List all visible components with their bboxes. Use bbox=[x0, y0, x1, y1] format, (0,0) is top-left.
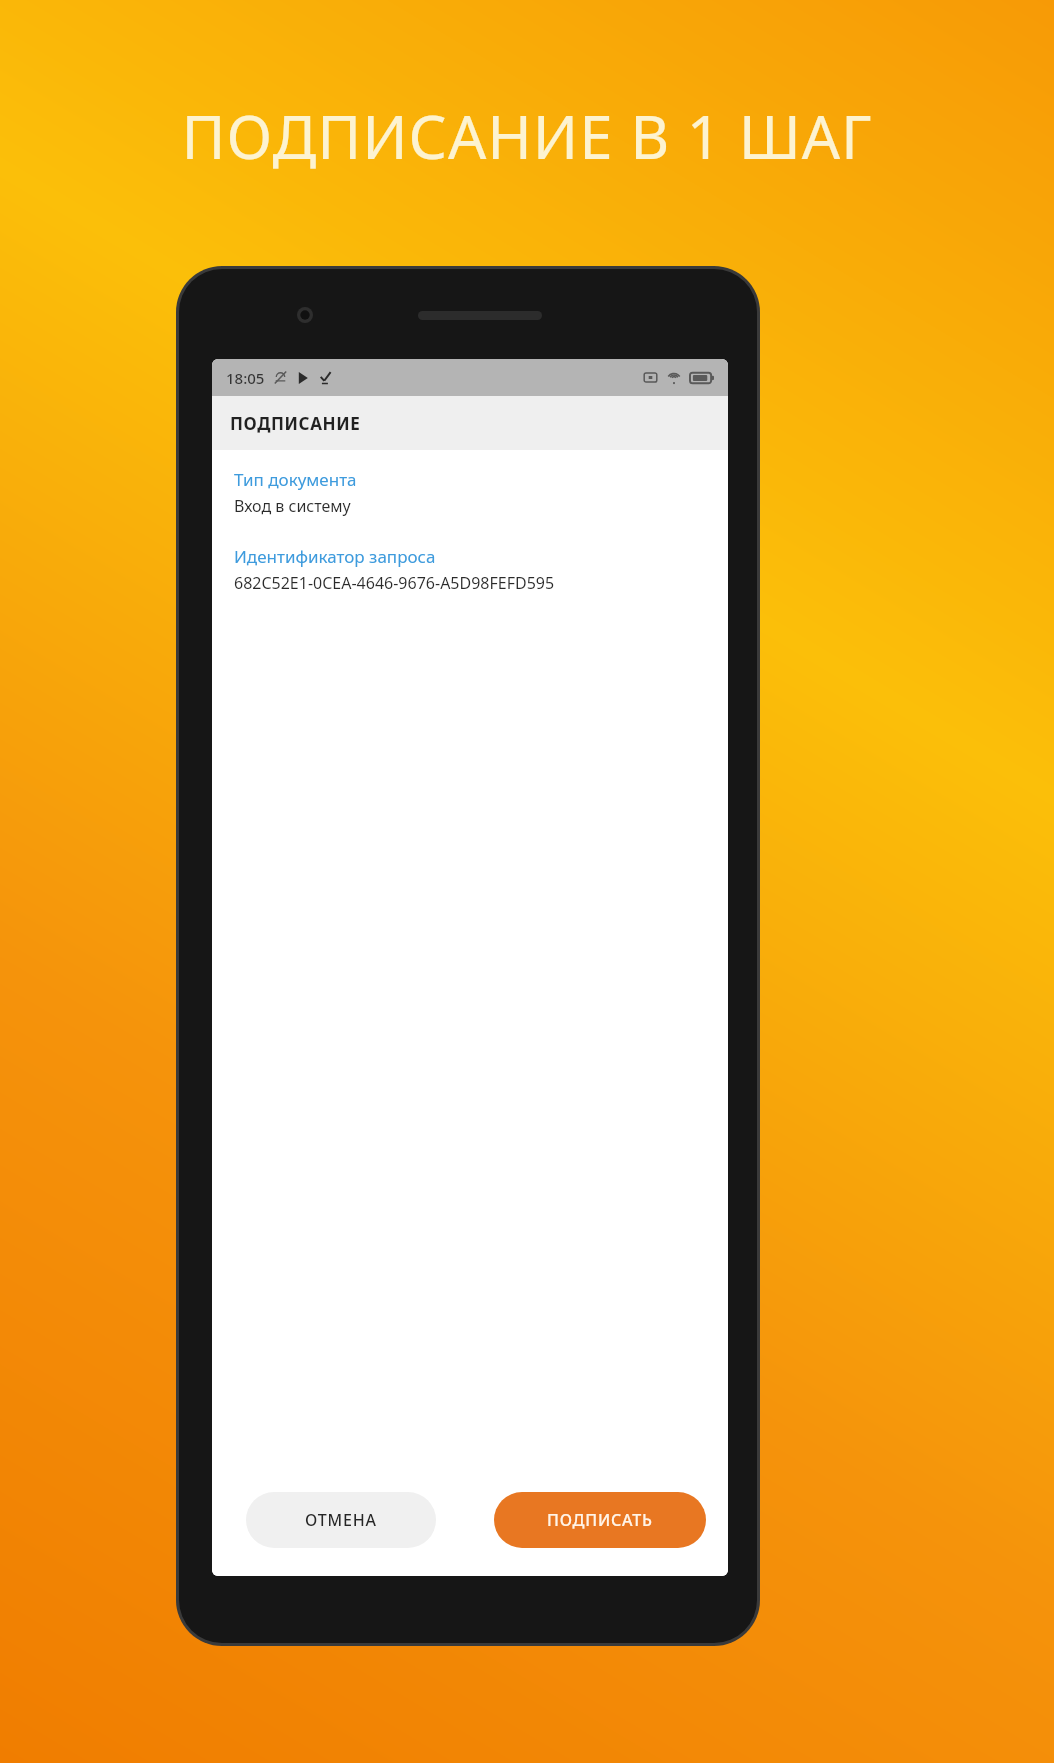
staticText: Вход в систему bbox=[234, 495, 351, 517]
staticText: ПОДПИСАТЬ bbox=[547, 1509, 653, 1531]
staticText: 682C52E1-0CEA-4646-9676-A5D98FEFD595 bbox=[234, 572, 555, 594]
staticText: Тип документа bbox=[234, 468, 357, 491]
button[interactable]: ПОДПИСАТЬ bbox=[494, 1492, 706, 1548]
staticText: ПОДПИСАНИЕ bbox=[230, 412, 361, 435]
staticText: ОТМЕНА bbox=[305, 1509, 377, 1531]
staticText: ПОДПИСАНИЕ В 1 ШАГ bbox=[0, 95, 1054, 177]
button[interactable]: ОТМЕНА bbox=[246, 1492, 436, 1548]
staticText: Идентификатор запроса bbox=[234, 545, 436, 568]
staticText: 18:05 bbox=[226, 368, 265, 388]
